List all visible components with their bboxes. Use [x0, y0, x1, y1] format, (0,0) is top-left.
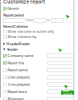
- button[interactable]: Report basis: [0, 88, 78, 95]
- button[interactable]: Report period: [0, 66, 78, 74]
- button[interactable]: Date prepared: [0, 74, 78, 81]
- staticText: Report period: [3, 13, 24, 17]
- staticText: Customize report: [3, 0, 45, 5]
- staticText: to: [47, 19, 50, 22]
- button[interactable]: Run report: [61, 90, 74, 95]
- staticText: Time prepared: [7, 82, 30, 87]
- staticText: Report period: [7, 68, 28, 72]
- staticText: Header: [7, 47, 18, 51]
- staticText: from: [26, 19, 32, 22]
- button[interactable]: Time prepared: [0, 81, 78, 88]
- staticText: Report basis: [7, 90, 27, 94]
- staticText: Date prepared: [7, 75, 30, 79]
- staticText: Company name: [7, 54, 33, 58]
- button[interactable]: Report title: [0, 59, 78, 66]
- staticText: Header/Footer: [6, 42, 29, 46]
- staticText: Show columns by: [7, 35, 36, 39]
- staticText: Rows/Columns: [3, 24, 28, 28]
- button[interactable]: Company name: [0, 52, 78, 59]
- button[interactable]: Alignment: [0, 95, 78, 100]
- staticText: General: [7, 7, 19, 11]
- staticText: Report title: [7, 61, 24, 65]
- staticText: Show non-zero or active only: [7, 30, 54, 34]
- staticText: Run report: [63, 89, 72, 96]
- staticText: Alignment: [7, 97, 23, 100]
